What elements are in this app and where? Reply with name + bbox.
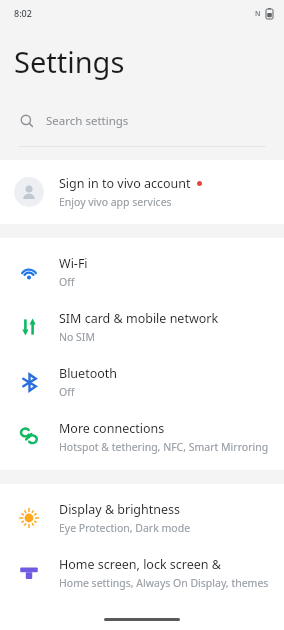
button[interactable]: Sign in to vivo account [0,160,284,224]
staticText: More connections [59,420,165,437]
button[interactable]: More connections [0,409,284,464]
button[interactable]: Display and brightness [0,490,284,545]
staticText: SIM card & mobile network [59,310,219,327]
button[interactable]: Bluetooth [0,354,284,409]
staticText: Enjoy vivo app services [59,195,172,209]
staticText: Hotspot & tethering, NFC, Smart Mirrorin… [59,440,269,454]
button[interactable]: SIM card and mobile network [0,299,284,354]
staticText: Settings [14,42,125,81]
staticText: Home settings, Always On Display, themes [59,576,269,590]
staticText: No SIM [59,330,95,344]
other: More connections [19,427,39,447]
staticText: Bluetooth [59,365,118,382]
staticText: Off [59,275,75,289]
button[interactable]: Home screen, lock screen and wallpaper [0,545,284,600]
staticText: Off [59,385,75,399]
staticText: Home screen, lock screen & wallpaper [59,556,272,573]
staticText: Wi-Fi [59,255,88,272]
staticText: Eye Protection, Dark mode [59,521,191,535]
staticText: Sign in to vivo account [59,175,191,192]
staticText: Display & brightness [59,501,181,518]
button[interactable]: Search settings [0,98,284,160]
staticText: N [255,9,261,19]
other: SIM card and mobile network [19,317,39,337]
other: Display and brightness [19,508,39,528]
staticText: 8:02 [14,7,32,19]
other: Bluetooth [20,373,39,392]
other: Wi-Fi [19,262,39,282]
staticText: Search settings [46,113,129,129]
other: Home screen, lock screen and wallpaper [19,563,39,583]
button[interactable]: Wi-Fi [0,244,284,299]
